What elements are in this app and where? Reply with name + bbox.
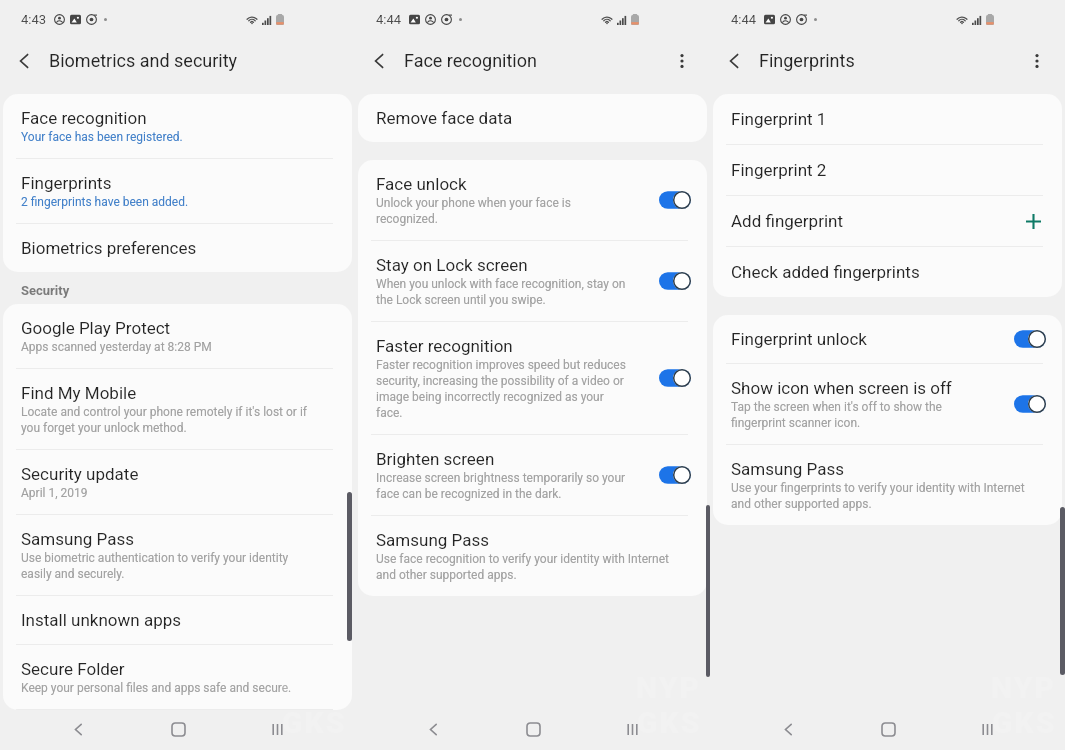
staticText: Install unknown apps [21,609,182,630]
staticText: Samsung Pass [21,528,134,549]
button[interactable]: Fingerprint 1 [713,94,1062,144]
staticText: 4:43 [21,12,47,27]
staticText: Samsung Pass [376,529,489,550]
button[interactable]: Fingerprint unlock [713,315,1062,363]
staticText: Keep your personal files and apps safe a… [21,679,292,695]
staticText: Use biometric authentication to verify y… [21,549,318,581]
button[interactable]: More options [654,38,710,83]
button[interactable]: More options [1009,38,1065,83]
staticText: Secure Folder [21,658,125,679]
staticText: Show icon when screen is off [731,377,952,398]
staticText: Security [21,283,70,298]
button[interactable]: Navigate up [710,38,758,83]
button[interactable]: Face recognition [3,94,352,158]
staticText: Samsung Pass [731,458,844,479]
staticText: Face unlock [376,173,467,194]
button[interactable]: Home [868,709,908,749]
button[interactable]: Face unlock switch [630,190,691,210]
button[interactable]: Recent apps [612,709,652,749]
button[interactable]: Show icon when screen is off switch [985,394,1046,414]
staticText: Fingerprint 2 [731,159,827,180]
staticText: Face recognition [21,107,147,128]
button[interactable]: Add fingerprint [1020,211,1046,231]
staticText: Unlock your phone when your face is reco… [376,194,630,226]
button[interactable]: Faster recognition switch [630,368,691,388]
button[interactable]: Fingerprints [3,159,352,223]
staticText: Use your fingerprints to verify your ide… [731,479,1028,511]
staticText: April 1, 2019 [21,484,88,500]
staticText: Security update [21,463,139,484]
button[interactable]: Home [158,709,198,749]
staticText: Fingerprint 1 [731,108,827,129]
button[interactable]: Security update [3,450,352,514]
button[interactable]: Check added fingerprints [713,247,1062,297]
staticText: Increase screen brightness temporarily s… [376,469,630,501]
button[interactable]: Navigate up [0,38,48,83]
staticText: Faster recognition improves speed but re… [376,356,630,420]
button[interactable]: Fingerprint unlock switch [985,329,1046,349]
staticText: 4:44 [731,12,757,27]
button[interactable]: Stay on Lock screen switch [630,271,691,291]
button[interactable]: Faster recognition [358,322,707,434]
button[interactable]: Recent apps [257,709,297,749]
button[interactable]: Add fingerprint [713,196,1062,246]
staticText: Use face recognition to verify your iden… [376,550,673,582]
staticText: Find My Mobile [21,382,137,403]
staticText: Add fingerprint [731,210,844,231]
button[interactable]: Find My Mobile [3,369,352,449]
button[interactable]: Google Play Protect [3,304,352,368]
button[interactable]: Fingerprint 2 [713,145,1062,195]
button[interactable]: Brighten screen switch [630,465,691,485]
staticText: GKS [637,705,702,740]
staticText: Fingerprints [759,50,855,71]
staticText: Google Play Protect [21,317,171,338]
button[interactable]: Samsung Pass [713,445,1062,525]
staticText: Biometrics preferences [21,237,197,258]
staticText: 2 fingerprints have been added. [21,193,189,209]
staticText: Faster recognition [376,335,513,356]
button[interactable]: Remove face data [358,94,707,142]
button[interactable]: Home [513,709,553,749]
button[interactable]: Brighten screen [358,435,707,515]
staticText: GKS [992,705,1057,740]
button[interactable]: Show icon when screen is off [713,364,1062,444]
staticText: Fingerprints [21,172,112,193]
button[interactable]: Back [413,709,453,749]
staticText: Remove face data [376,107,513,128]
staticText: Face recognition [404,50,537,71]
button[interactable]: Samsung Pass [3,515,352,595]
staticText: 4:44 [376,12,402,27]
button[interactable]: Samsung Pass [358,516,707,596]
staticText: Check added fingerprints [731,261,920,282]
staticText: Apps scanned yesterday at 8:28 PM [21,338,212,354]
staticText: Biometrics and security [49,50,238,71]
button[interactable]: Secure Folder [3,645,352,709]
staticText: Locate and control your phone remotely i… [21,403,318,435]
button[interactable]: Back [768,709,808,749]
staticText: Your face has been registered. [21,128,183,144]
button[interactable]: Face unlock [358,160,707,240]
button[interactable]: Stay on Lock screen [358,241,707,321]
button[interactable]: Biometrics preferences [3,224,352,272]
staticText: When you unlock with face recognition, s… [376,275,630,307]
staticText: Brighten screen [376,448,495,469]
button[interactable]: Install unknown apps [3,596,352,644]
button[interactable]: Back [58,709,98,749]
staticText: GKS [282,705,347,740]
staticText: Stay on Lock screen [376,254,528,275]
button[interactable]: Navigate up [355,38,403,83]
staticText: NYP [281,670,347,705]
button[interactable]: Recent apps [967,709,1007,749]
staticText: Tap the screen when it's off to show the… [731,398,985,430]
staticText: Fingerprint unlock [731,328,867,349]
